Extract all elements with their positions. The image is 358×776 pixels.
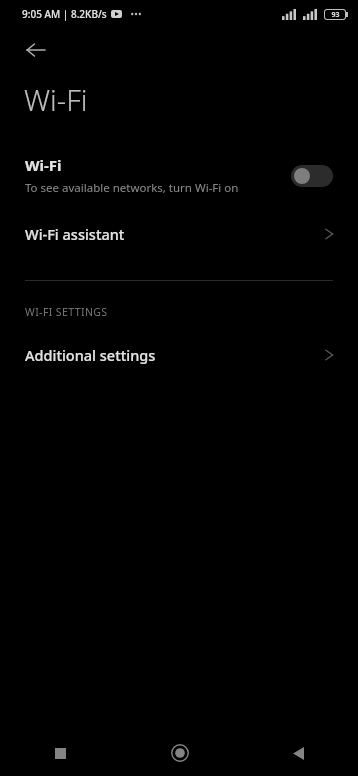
staticText: 9:05 AM | 8.2KB/s	[22, 7, 107, 21]
staticText: To see available networks, turn Wi-Fi on	[25, 180, 239, 196]
button[interactable]: Wi-Fi toggle	[291, 165, 333, 187]
button[interactable]: Recents	[0, 730, 120, 776]
button[interactable]: Wi-Fi assistant	[0, 214, 358, 254]
staticText: Wi-Fi assistant	[25, 224, 325, 244]
staticText: Additional settings	[25, 345, 325, 365]
button[interactable]: Back	[239, 730, 358, 776]
staticText: WI-FI SETTINGS	[25, 305, 108, 319]
staticText: Wi-Fi	[25, 155, 62, 175]
button[interactable]: Back	[16, 30, 56, 70]
staticText: 93	[331, 10, 340, 19]
staticText: Wi-Fi	[24, 80, 88, 119]
button[interactable]: Wi-Fi	[0, 151, 358, 200]
button[interactable]: Additional settings	[0, 335, 358, 375]
button[interactable]: Home	[120, 730, 239, 776]
